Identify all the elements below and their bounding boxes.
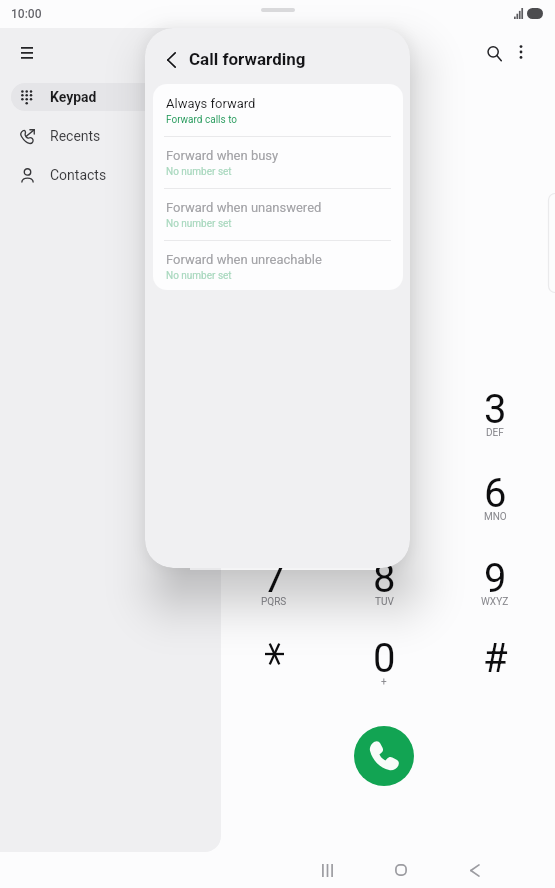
button[interactable]: 9 <box>450 555 540 615</box>
staticText: Call forwarding <box>189 49 306 69</box>
staticText: DEF <box>486 427 504 439</box>
staticText: Forward calls to <box>166 114 238 126</box>
button[interactable]: Always forward <box>153 84 403 136</box>
staticText: # <box>483 635 508 682</box>
staticText: 10:00 <box>11 7 42 21</box>
button[interactable]: Call <box>354 726 414 786</box>
button[interactable]: More options <box>503 34 539 70</box>
staticText: 7 <box>263 555 286 602</box>
staticText: No number set <box>166 218 232 230</box>
staticText: Always forward <box>166 96 256 111</box>
button[interactable]: 0 <box>339 635 429 695</box>
button[interactable]: 8 <box>339 555 429 615</box>
staticText: No number set <box>166 270 232 282</box>
staticText: Contacts <box>50 167 107 183</box>
button[interactable]: Recent apps <box>290 852 364 888</box>
button[interactable]: Forward when unanswered <box>153 188 403 240</box>
staticText: MNO <box>484 511 507 523</box>
staticText: Recents <box>50 128 101 144</box>
staticText: WXYZ <box>481 596 509 608</box>
button[interactable]: 2 <box>339 386 429 446</box>
staticText: 3 <box>484 386 507 433</box>
button[interactable]: # <box>450 635 540 695</box>
button[interactable]: 3 <box>450 386 540 446</box>
staticText: 8 <box>373 555 396 602</box>
button[interactable] <box>229 635 319 695</box>
button[interactable]: Home <box>364 852 438 888</box>
button[interactable]: Back <box>437 852 511 888</box>
staticText: TUV <box>375 596 394 608</box>
button[interactable]: 7 <box>229 555 319 615</box>
button[interactable]: Search <box>476 35 512 71</box>
staticText: Forward when unreachable <box>166 252 322 267</box>
staticText: Forward when busy <box>166 148 279 163</box>
button[interactable]: Open navigation menu <box>8 33 46 71</box>
button[interactable]: Keypad <box>11 83 221 111</box>
staticText: 9 <box>484 555 507 602</box>
button[interactable]: Contacts <box>11 161 221 189</box>
staticText: 0 <box>373 635 396 682</box>
button[interactable]: 6 <box>450 470 540 530</box>
button[interactable]: Recents <box>11 122 221 150</box>
button[interactable]: Back <box>153 42 189 78</box>
staticText: PQRS <box>261 596 287 608</box>
staticText: 6 <box>484 470 507 517</box>
staticText: Forward when unanswered <box>166 200 322 215</box>
button[interactable]: Forward when busy <box>153 136 403 188</box>
button[interactable]: 5 <box>339 470 429 530</box>
staticText: + <box>381 676 387 688</box>
button[interactable]: Forward when unreachable <box>153 240 403 290</box>
staticText: No number set <box>166 166 232 178</box>
staticText: Keypad <box>50 89 97 105</box>
